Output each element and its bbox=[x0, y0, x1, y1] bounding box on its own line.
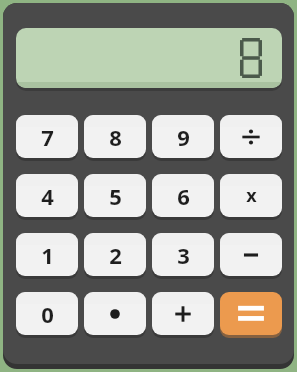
button[interactable]: 7 bbox=[16, 115, 78, 158]
button[interactable]: Multiply bbox=[220, 174, 282, 217]
staticText: 4 bbox=[41, 181, 54, 211]
button[interactable]: 4 bbox=[16, 174, 78, 217]
staticText: 3 bbox=[177, 240, 190, 270]
staticText: 7 bbox=[41, 122, 54, 152]
button[interactable]: 0 bbox=[16, 292, 78, 335]
button[interactable]: Minus bbox=[220, 233, 282, 276]
staticText: x bbox=[246, 183, 257, 208]
button[interactable]: 6 bbox=[152, 174, 214, 217]
staticText: 9 bbox=[177, 122, 190, 152]
staticText: 2 bbox=[109, 240, 122, 270]
staticText: 0 bbox=[41, 299, 54, 329]
button[interactable]: Decimal point bbox=[84, 292, 146, 335]
button[interactable]: 9 bbox=[152, 115, 214, 158]
button[interactable]: Divide bbox=[220, 115, 282, 158]
button[interactable]: Equals bbox=[220, 292, 282, 335]
button[interactable]: 3 bbox=[152, 233, 214, 276]
button[interactable]: 1 bbox=[16, 233, 78, 276]
button[interactable]: 5 bbox=[84, 174, 146, 217]
staticText: 6 bbox=[177, 181, 190, 211]
staticText: 1 bbox=[41, 240, 54, 270]
button[interactable]: Plus bbox=[152, 292, 214, 335]
staticText: 8 bbox=[109, 122, 122, 152]
button[interactable]: 2 bbox=[84, 233, 146, 276]
staticText: 5 bbox=[109, 181, 122, 211]
button[interactable]: 8 bbox=[84, 115, 146, 158]
